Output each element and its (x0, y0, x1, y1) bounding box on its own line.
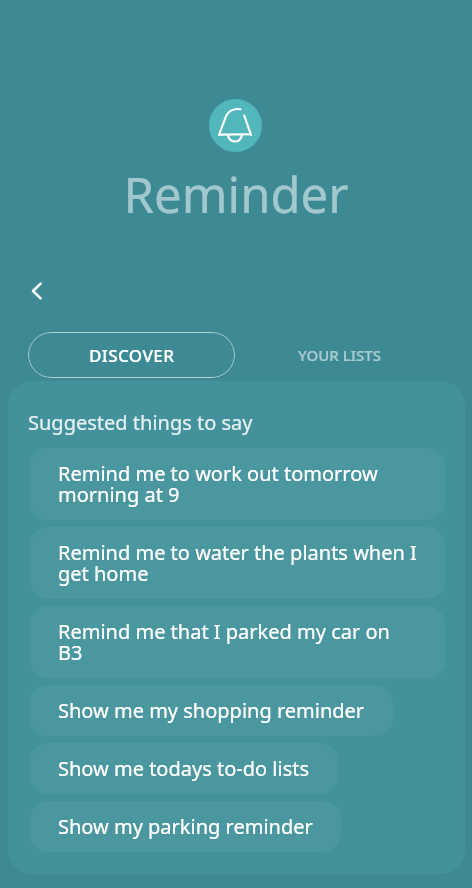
button[interactable]: Back (17, 271, 57, 311)
staticText: Remind me to water the plants when I get… (58, 539, 417, 587)
staticText: Show me my shopping reminder (58, 697, 365, 724)
staticText: DISCOVER (89, 344, 175, 367)
button[interactable]: Show my parking reminder (30, 801, 341, 852)
staticText: Remind me that I parked my car on B3 (58, 618, 417, 666)
staticText: Show my parking reminder (58, 813, 313, 840)
button[interactable]: Remind me to work out tomorrow morning a… (30, 448, 445, 520)
button[interactable]: Remind me to water the plants when I get… (30, 527, 445, 599)
staticText: YOUR LISTS (298, 345, 381, 365)
button[interactable]: Remind me that I parked my car on B3 (30, 606, 445, 678)
staticText: Suggested things to say (28, 409, 253, 436)
staticText: Remind me to work out tomorrow morning a… (58, 460, 417, 508)
button[interactable]: YOUR LISTS (235, 332, 444, 378)
staticText: Reminder (0, 161, 472, 228)
staticText: Show me todays to-do lists (58, 755, 310, 782)
button[interactable]: DISCOVER (28, 332, 235, 378)
button[interactable]: Show me my shopping reminder (30, 685, 393, 736)
button[interactable]: Show me todays to-do lists (30, 743, 338, 794)
